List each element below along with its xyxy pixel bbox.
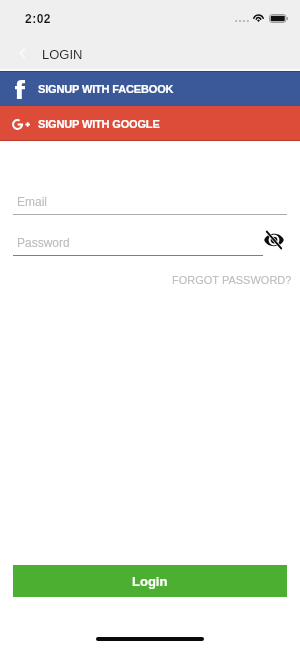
staticText: Email: [17, 195, 48, 208]
staticText: LOGIN: [42, 47, 83, 62]
staticText: Password: [17, 236, 70, 249]
button[interactable]: Toggle password visibility: [262, 228, 285, 251]
button[interactable]: SIGNUP WITH FACEBOOK: [0, 71, 300, 106]
button[interactable]: Login: [13, 565, 287, 597]
button[interactable]: FORGOT PASSWORD?: [170, 272, 294, 288]
staticText: SIGNUP WITH GOOGLE: [38, 118, 160, 130]
staticText: Login: [132, 574, 168, 589]
button[interactable]: SIGNUP WITH GOOGLE: [0, 106, 300, 141]
staticText: 2:02: [25, 12, 52, 25]
staticText: SIGNUP WITH FACEBOOK: [38, 83, 174, 95]
button[interactable]: Email: [13, 190, 287, 215]
button[interactable]: Password: [13, 231, 263, 256]
staticText: FORGOT PASSWORD?: [172, 274, 292, 286]
